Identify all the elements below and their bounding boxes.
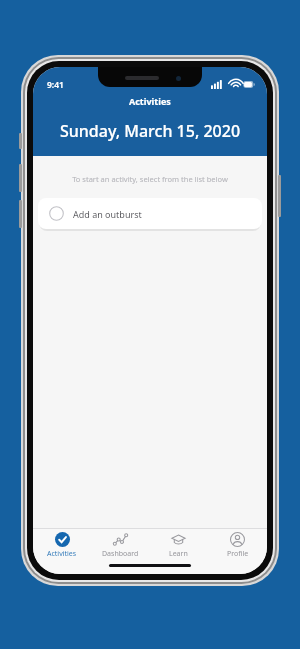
staticText: Sunday, March 15, 2020: [60, 120, 241, 142]
staticText: 9:41: [47, 79, 64, 91]
button[interactable]: Dashboard: [91, 529, 149, 562]
button[interactable]: Learn: [149, 529, 208, 562]
staticText: Profile: [227, 549, 249, 559]
staticText: To start an activity, select from the li…: [33, 174, 267, 184]
staticText: Activities: [47, 549, 77, 559]
button[interactable]: Profile: [208, 529, 267, 562]
button[interactable]: Activities: [33, 529, 91, 562]
staticText: Dashboard: [102, 549, 139, 559]
staticText: Activities: [129, 95, 171, 107]
staticText: Add an outburst: [73, 208, 142, 220]
button[interactable]: Add an outburst: [38, 198, 262, 229]
staticText: Learn: [169, 549, 188, 559]
